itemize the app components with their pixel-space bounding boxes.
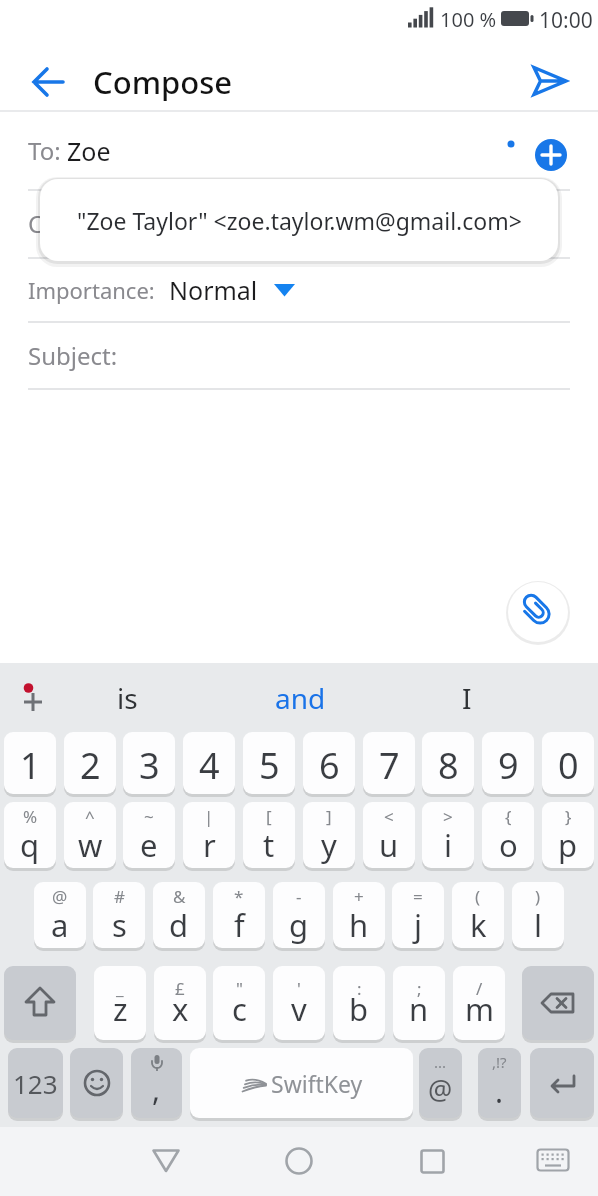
button[interactable] (530, 1138, 576, 1184)
staticText: } (565, 805, 572, 828)
staticText: £ (175, 977, 185, 1000)
button[interactable]: Importance: (0, 258, 598, 322)
button[interactable] (4, 966, 76, 1040)
staticText: 123 (13, 1066, 58, 1101)
button[interactable]: 6 (303, 732, 355, 794)
button[interactable]: ( (452, 882, 504, 948)
button[interactable] (140, 1135, 192, 1187)
button[interactable] (535, 139, 567, 171)
staticText: ] (326, 805, 332, 828)
button[interactable]: and (250, 676, 350, 720)
button[interactable]: ^ (64, 802, 116, 868)
staticText: # (114, 885, 125, 908)
button[interactable]: < (363, 802, 415, 868)
button[interactable] (522, 56, 578, 106)
button[interactable]: : (333, 966, 385, 1040)
button[interactable]: * (213, 882, 265, 948)
button[interactable]: Cc/Bcc: (28, 190, 109, 257)
staticText: [ (266, 805, 272, 828)
button[interactable]: 5 (243, 732, 295, 794)
staticText: k (470, 904, 487, 946)
button[interactable]: ; (393, 966, 445, 1040)
staticText: d (169, 904, 189, 946)
staticText: , (152, 1069, 161, 1110)
button[interactable]: _ (94, 966, 146, 1040)
staticText: 10:00 (539, 6, 593, 32)
button[interactable]: 4 (183, 732, 235, 794)
staticText: w (78, 824, 103, 866)
button[interactable]: is (77, 676, 177, 720)
staticText: x (172, 988, 189, 1030)
staticText: . (495, 1071, 504, 1112)
staticText: 100 % (440, 6, 497, 32)
button[interactable] (8, 672, 56, 720)
staticText: + (354, 885, 364, 908)
staticText: u (379, 824, 399, 866)
button[interactable] (70, 1048, 123, 1118)
button[interactable]: Subject: (0, 322, 598, 388)
button[interactable]: @ (34, 882, 86, 948)
staticText: z (113, 988, 128, 1030)
button[interactable] (22, 58, 74, 106)
button[interactable]: 2 (64, 732, 116, 794)
staticText: Subject: (28, 339, 118, 372)
button[interactable]: % (4, 802, 56, 868)
button[interactable]: I (417, 676, 517, 720)
staticText: 0 (558, 741, 579, 790)
button[interactable]: 123 (8, 1048, 63, 1118)
staticText: 1 (20, 741, 41, 790)
button[interactable]: ] (303, 802, 355, 868)
button[interactable]: To: (0, 112, 598, 189)
staticText: SwiftKey (271, 1068, 363, 1099)
button[interactable]: 9 (482, 732, 534, 794)
staticText: 3 (139, 741, 160, 790)
staticText: 7 (379, 741, 400, 790)
button[interactable]: 8 (422, 732, 474, 794)
staticText: " (236, 977, 243, 1000)
button[interactable] (530, 1048, 594, 1118)
staticText: = (413, 885, 423, 908)
button[interactable]: " (213, 966, 265, 1040)
button[interactable]: 0 (542, 732, 594, 794)
staticText: ,!? (492, 1052, 507, 1072)
button[interactable]: ) (512, 882, 564, 948)
staticText: @ (428, 1071, 453, 1108)
button[interactable] (273, 1135, 325, 1187)
staticText: 4 (199, 741, 220, 790)
button[interactable]: 7 (363, 732, 415, 794)
button[interactable]: > (422, 802, 474, 868)
staticText: is (117, 679, 138, 717)
staticText: / (476, 977, 483, 1000)
button[interactable]: "Zoe Taylor" <zoe.taylor.wm@gmail.com> (40, 179, 558, 261)
button[interactable]: - (273, 882, 325, 948)
button[interactable]: { (482, 802, 534, 868)
button[interactable]: / (453, 966, 505, 1040)
button[interactable]: ,!? (478, 1048, 521, 1118)
staticText: i (444, 824, 452, 866)
staticText: ; (417, 977, 422, 1000)
button[interactable] (522, 966, 594, 1040)
button[interactable]: SwiftKey (190, 1048, 413, 1118)
button[interactable]: ~ (123, 802, 175, 868)
button[interactable]: ... (419, 1048, 462, 1118)
button[interactable]: £ (154, 966, 206, 1040)
button[interactable]: 1 (4, 732, 56, 794)
button[interactable]: # (93, 882, 145, 948)
button[interactable]: , (131, 1048, 182, 1118)
staticText: Compose (93, 61, 233, 103)
button[interactable]: + (333, 882, 385, 948)
button[interactable]: | (183, 802, 235, 868)
staticText: ' (297, 977, 301, 1000)
staticText: ) (535, 885, 541, 908)
button[interactable]: 3 (123, 732, 175, 794)
staticText: 9 (498, 741, 519, 790)
button[interactable] (406, 1135, 458, 1187)
button[interactable]: & (153, 882, 205, 948)
button[interactable]: = (392, 882, 444, 948)
staticText: Zoe (67, 134, 111, 168)
button[interactable] (508, 582, 568, 642)
button[interactable]: } (542, 802, 594, 868)
button[interactable]: ' (273, 966, 325, 1040)
staticText: ( (475, 885, 481, 908)
button[interactable]: [ (243, 802, 295, 868)
